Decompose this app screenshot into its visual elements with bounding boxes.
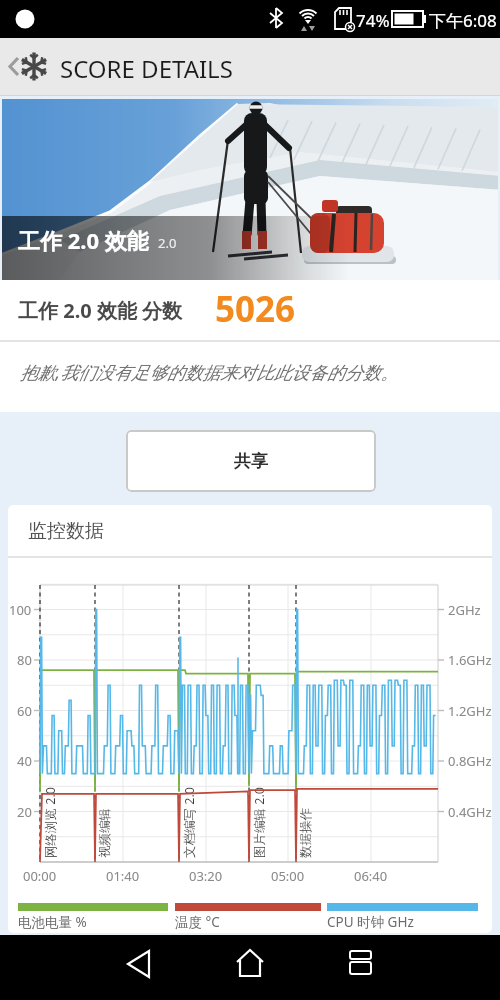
- staticText: 共享: [234, 451, 268, 472]
- staticText: 2GHz: [448, 601, 481, 619]
- button[interactable]: [113, 941, 163, 989]
- staticText: 40: [17, 752, 32, 770]
- staticText: 电池电量 %: [18, 913, 87, 931]
- button[interactable]: [225, 941, 275, 989]
- staticText: 2.0: [158, 234, 177, 252]
- staticText: 06:40: [354, 867, 388, 885]
- button[interactable]: [2, 46, 30, 90]
- staticText: 工作 2.0 效能 分数: [18, 297, 183, 324]
- staticText: 20: [17, 803, 32, 821]
- staticText: 0.8GHz: [448, 752, 492, 770]
- staticText: 60: [17, 702, 32, 720]
- staticText: SCORE DETAILS: [60, 52, 233, 85]
- staticText: 00:00: [23, 867, 57, 885]
- staticText: CPU 时钟 GHz: [327, 913, 414, 931]
- staticText: 03:20: [189, 867, 223, 885]
- staticText: 74%: [356, 9, 390, 32]
- staticText: 工作 2.0 效能: [18, 225, 149, 255]
- staticText: 100: [9, 601, 32, 619]
- staticText: 05:00: [271, 867, 305, 885]
- staticText: 监控数据: [28, 519, 104, 543]
- staticText: 抱歉,我们没有足够的数据来对比此设备的分数。: [20, 360, 399, 384]
- staticText: 温度 °C: [175, 913, 220, 931]
- button[interactable]: 共享: [126, 430, 376, 492]
- staticText: 80: [17, 651, 32, 669]
- staticText: 下午6:08: [429, 9, 497, 32]
- staticText: 0.4GHz: [448, 803, 492, 821]
- staticText: 1.6GHz: [448, 651, 492, 669]
- staticText: 1.2GHz: [448, 702, 492, 720]
- staticText: 5026: [215, 285, 296, 333]
- button[interactable]: [336, 941, 386, 989]
- staticText: 01:40: [106, 867, 140, 885]
